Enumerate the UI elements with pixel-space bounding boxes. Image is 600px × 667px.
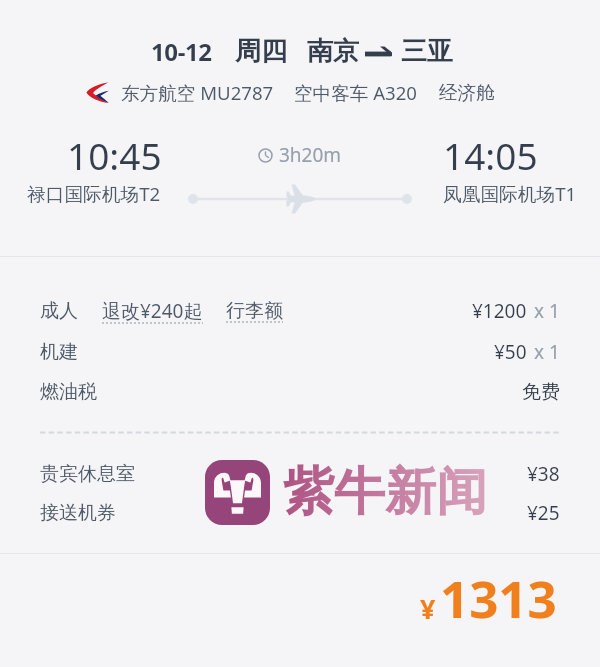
staticText: x 1 xyxy=(534,339,560,365)
staticText: 接送机券 xyxy=(40,501,116,525)
staticText: 1313 xyxy=(440,563,557,632)
staticText: 禄口国际机场T2 xyxy=(27,181,161,207)
staticText: 免费 xyxy=(522,380,560,404)
staticText: 凤凰国际机场T1 xyxy=(443,181,577,207)
staticText: 10:45 xyxy=(67,130,162,180)
staticText: 10-12 xyxy=(151,35,212,68)
staticText: 14:05 xyxy=(443,130,538,180)
staticText: ¥38 xyxy=(527,461,560,487)
staticText: 紫牛新闻 xyxy=(283,460,487,524)
staticText: 成人 xyxy=(40,299,78,323)
staticText: ¥1200 xyxy=(472,298,527,324)
staticText: ¥ xyxy=(420,590,436,627)
staticText: x 1 xyxy=(534,298,560,324)
staticText: ¥25 xyxy=(527,500,560,526)
staticText: 南京 xyxy=(307,35,359,68)
staticText: 空中客车 A320 xyxy=(294,80,417,105)
staticText: 贵宾休息室 xyxy=(40,462,135,486)
staticText: 三亚 xyxy=(401,35,453,68)
staticText: 周四 xyxy=(235,35,287,68)
staticText: 经济舱 xyxy=(439,81,495,104)
staticText: 东方航空 MU2787 xyxy=(121,80,274,105)
staticText: ¥50 xyxy=(494,339,527,365)
button[interactable]: 行李额 xyxy=(226,299,283,323)
staticText: 燃油税 xyxy=(40,380,97,404)
staticText: 机建 xyxy=(40,340,78,364)
button[interactable]: 退改¥240起 xyxy=(102,298,203,324)
staticText: 3h20m xyxy=(279,142,342,168)
